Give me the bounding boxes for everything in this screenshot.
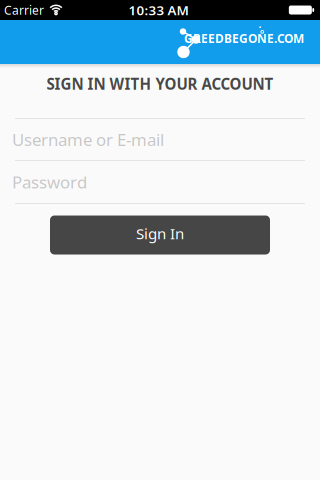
button[interactable]: Sign In	[50, 215, 270, 254]
staticText: 10:33 AM	[128, 1, 188, 19]
staticText: Username or E-mail	[12, 128, 164, 151]
button[interactable]: Username or E-mail	[0, 119, 320, 160]
staticText: Sign In	[136, 223, 184, 244]
staticText: SIGN IN WITH YOUR ACCOUNT	[46, 74, 273, 94]
button[interactable]: Password	[0, 161, 320, 202]
staticText: GREEDBEGONE.COM	[184, 30, 304, 47]
staticText: Password	[12, 171, 87, 193]
staticText: Carrier	[4, 2, 44, 18]
